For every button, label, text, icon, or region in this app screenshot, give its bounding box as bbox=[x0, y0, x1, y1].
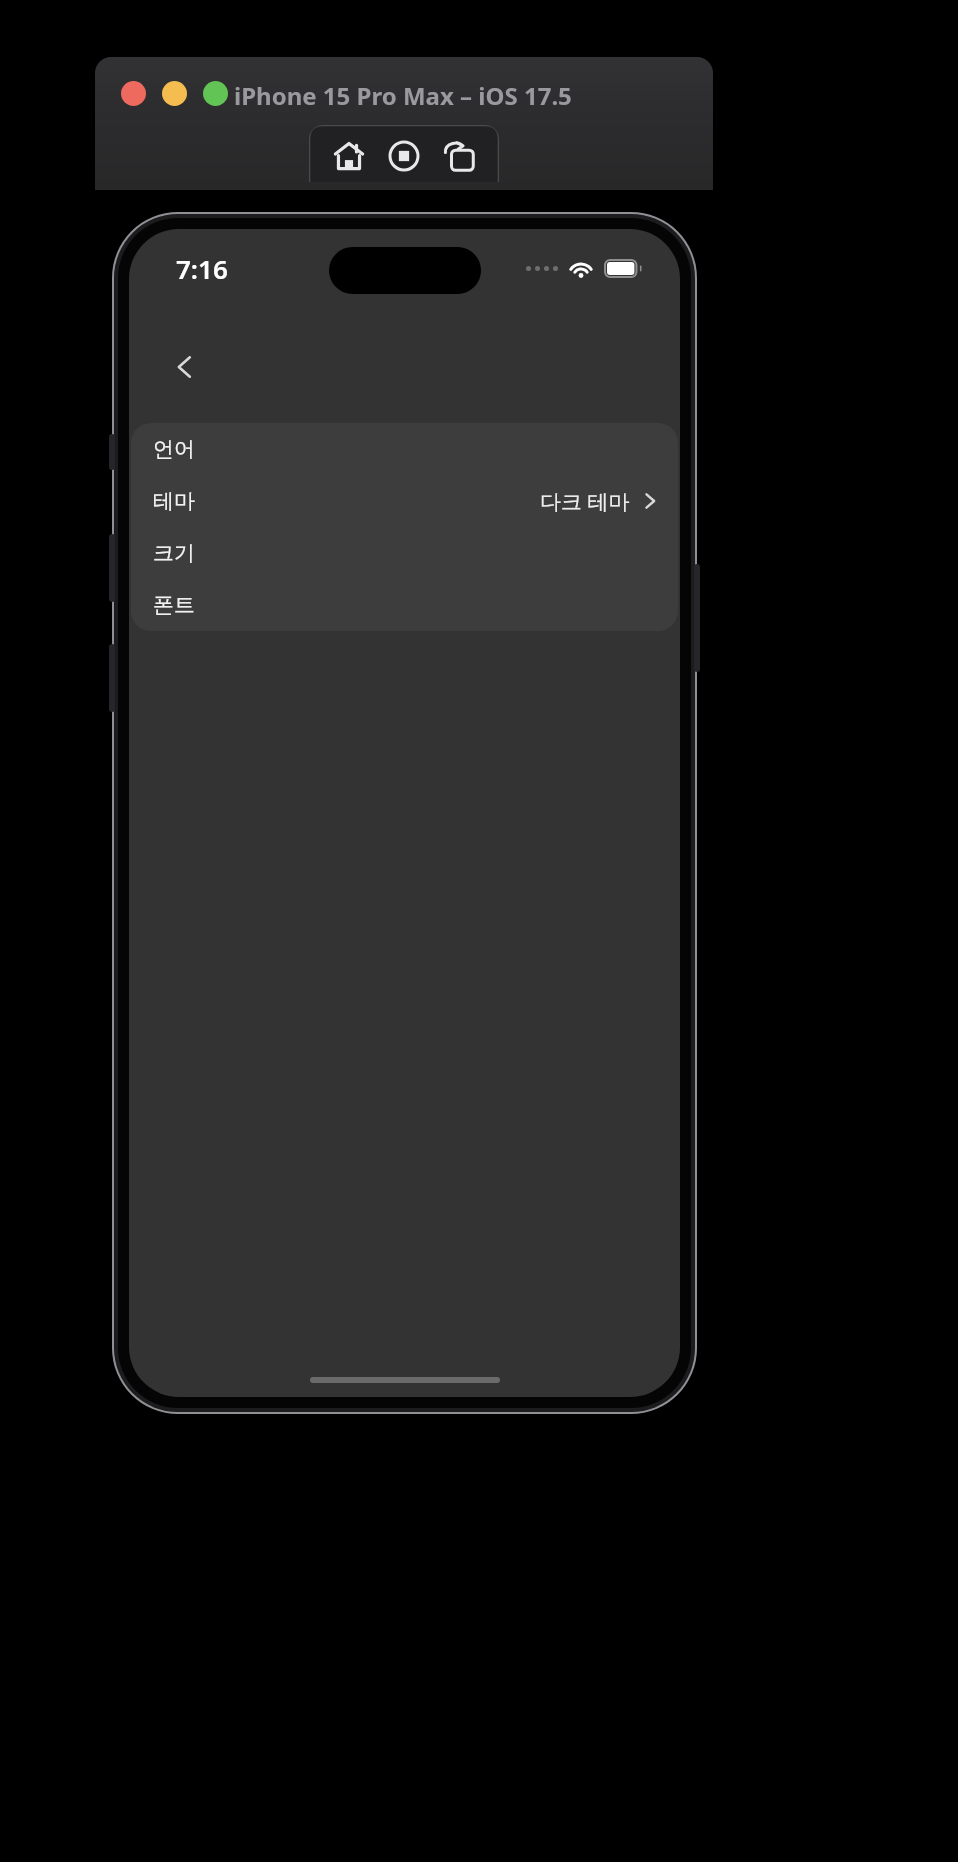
button[interactable]: Close bbox=[121, 81, 146, 106]
button[interactable]: Record bbox=[378, 130, 430, 182]
staticText: 테마 bbox=[153, 488, 195, 514]
staticText: 폰트 bbox=[153, 592, 195, 618]
button[interactable]: 언어 bbox=[131, 423, 678, 475]
button[interactable]: Back bbox=[157, 339, 213, 395]
button[interactable]: Zoom bbox=[203, 81, 228, 106]
staticText: 크기 bbox=[153, 540, 195, 566]
button[interactable]: 크기 bbox=[131, 527, 678, 579]
button[interactable]: 테마 bbox=[131, 475, 678, 527]
button[interactable]: Rotate bbox=[433, 130, 485, 182]
staticText: 언어 bbox=[153, 436, 195, 462]
staticText: 7:16 bbox=[176, 251, 228, 286]
staticText: 다크 테마 bbox=[540, 487, 630, 516]
button[interactable]: 폰트 bbox=[131, 579, 678, 631]
button[interactable]: Home bbox=[323, 130, 375, 182]
button[interactable]: Minimize bbox=[162, 81, 187, 106]
staticText: iPhone 15 Pro Max – iOS 17.5 bbox=[234, 79, 634, 112]
